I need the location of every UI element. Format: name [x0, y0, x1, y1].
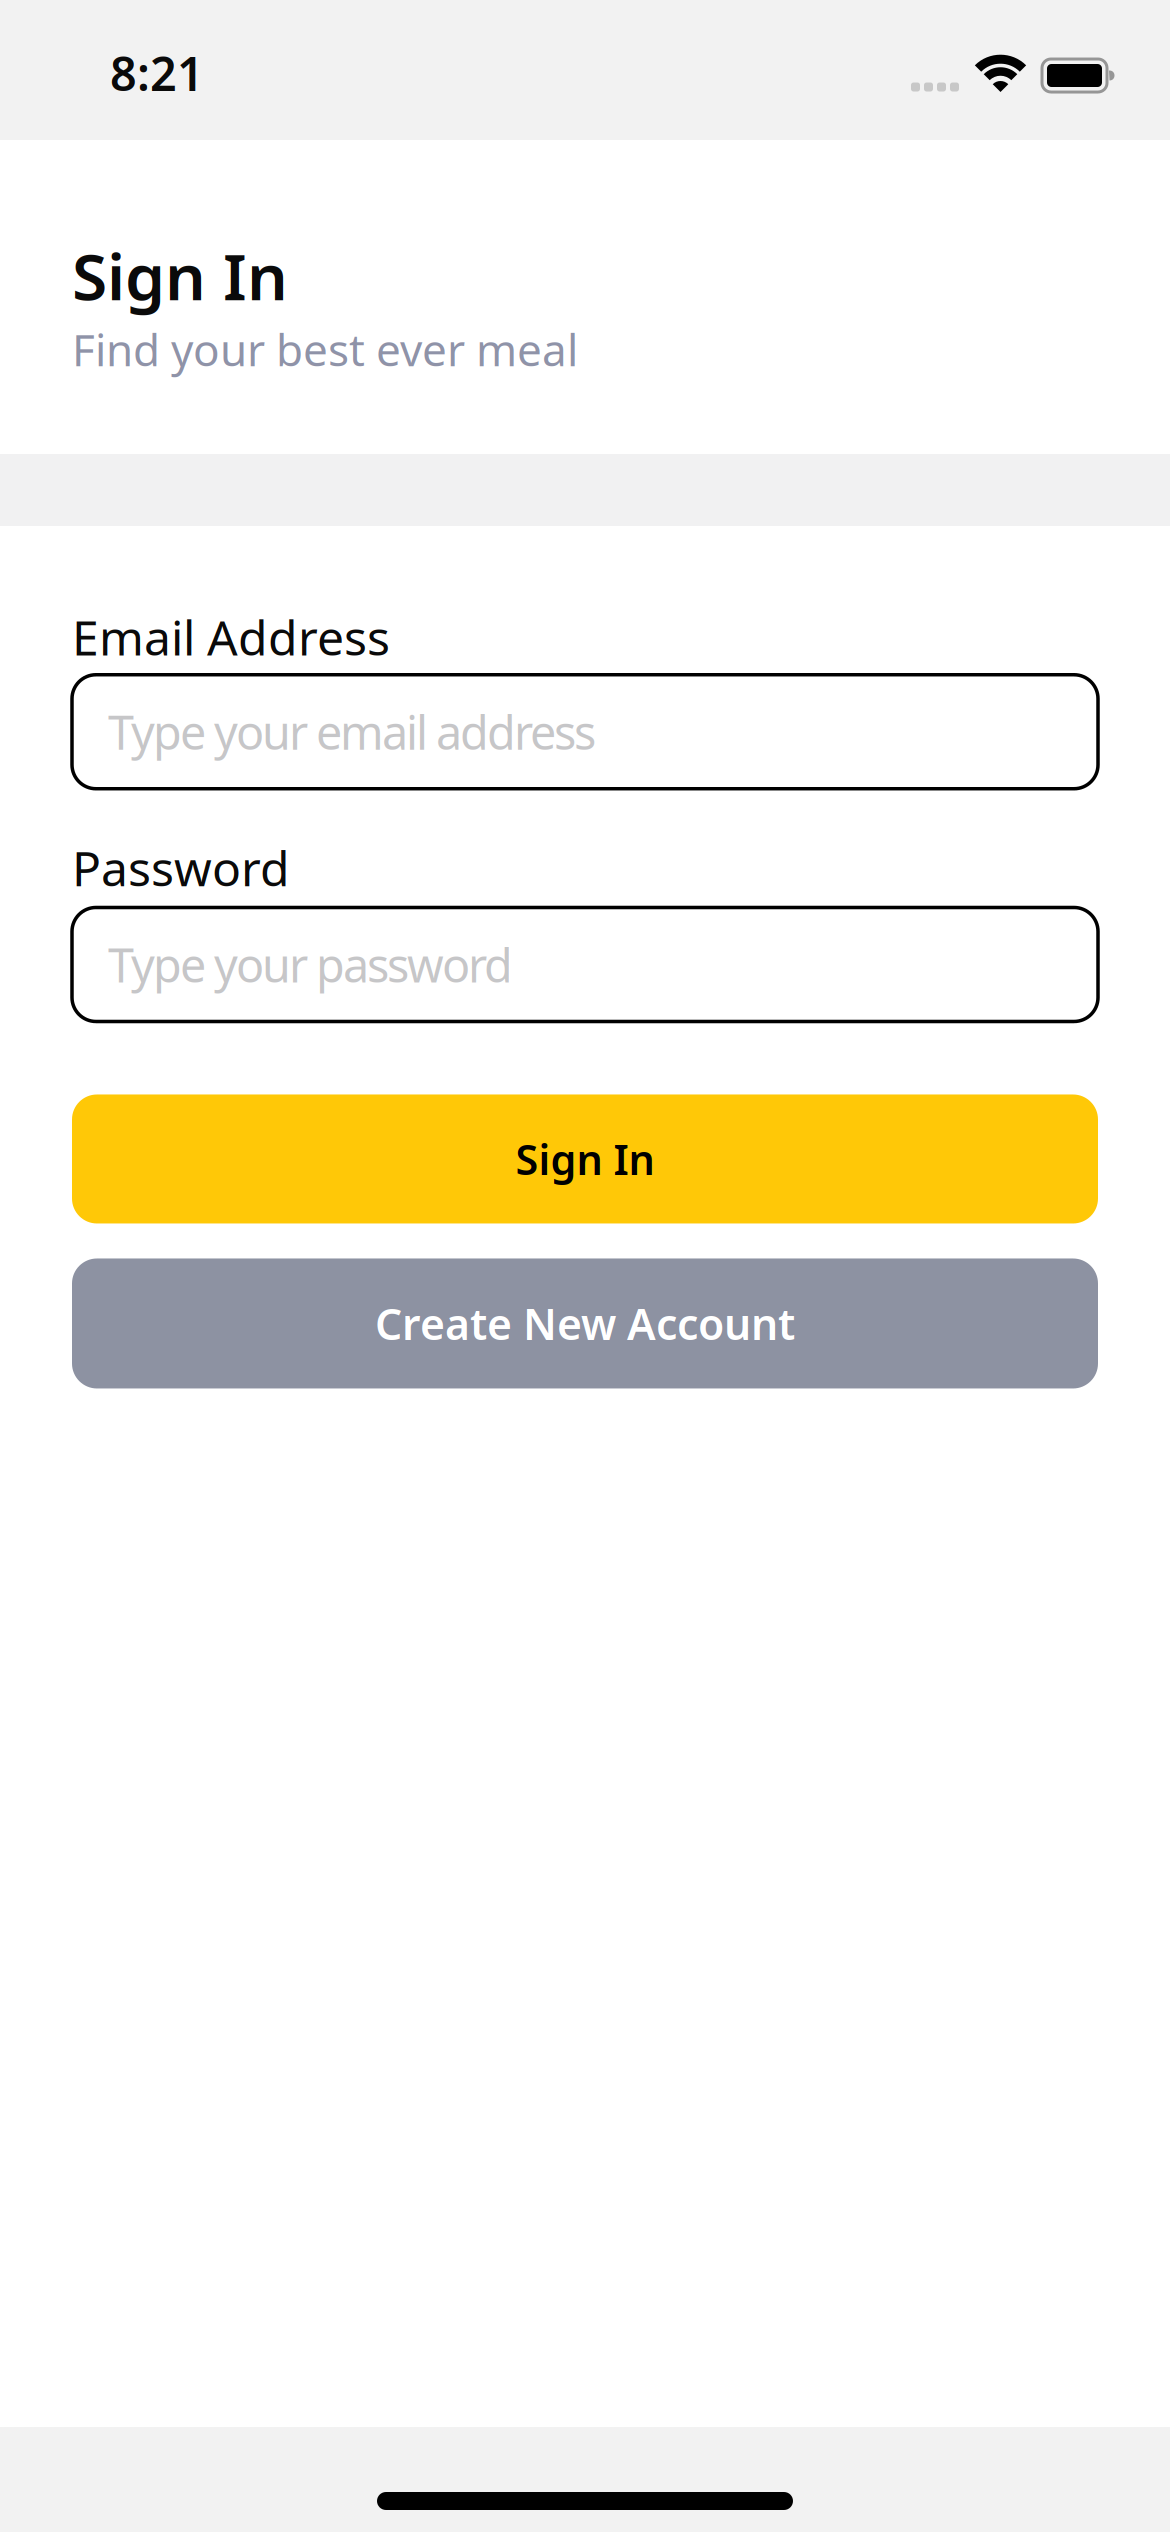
button[interactable]: Type your email address	[72, 675, 1098, 789]
staticText: Type your password	[108, 933, 513, 995]
staticText: Create New Account	[375, 1295, 795, 1352]
button[interactable]: Type your password	[72, 907, 1098, 1021]
staticText: 8:21	[110, 42, 204, 104]
staticText: Type your email address	[108, 701, 596, 763]
staticText: Sign In	[72, 233, 288, 318]
staticText: Email Address	[72, 605, 390, 669]
staticText: Sign In	[515, 1131, 654, 1186]
button[interactable]: Sign In	[72, 1094, 1098, 1223]
staticText: Find your best ever meal	[72, 320, 578, 378]
button[interactable]: Create New Account	[72, 1258, 1098, 1388]
staticText: Password	[72, 836, 290, 899]
